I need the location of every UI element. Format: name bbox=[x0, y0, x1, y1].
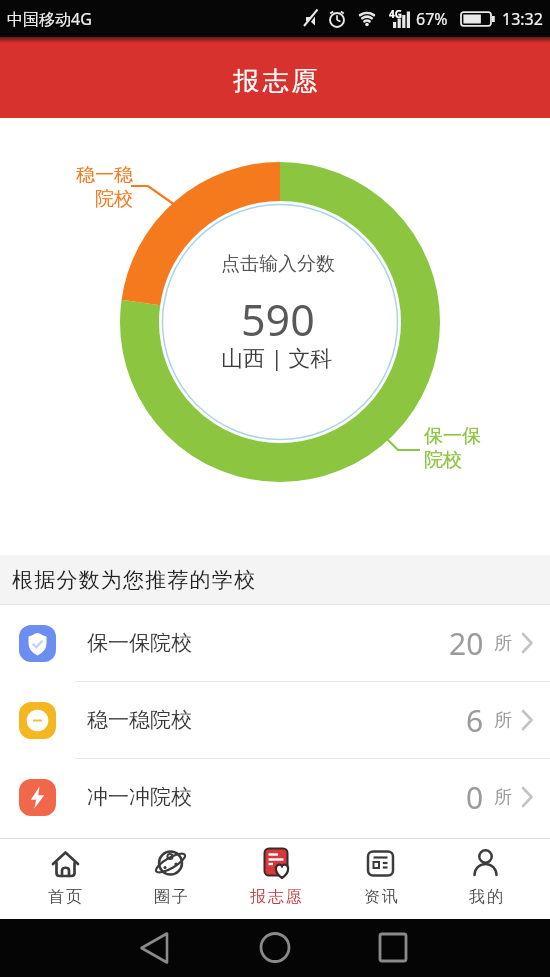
staticText: 首页 bbox=[47, 887, 83, 907]
staticText: 点击输入分数 bbox=[221, 252, 335, 276]
staticText: 报志愿 bbox=[249, 887, 303, 907]
staticText: 590 bbox=[241, 290, 315, 349]
staticText: 保一保院校 bbox=[87, 630, 192, 656]
staticText: 20 bbox=[449, 623, 484, 664]
staticText: 院校 bbox=[424, 448, 462, 472]
staticText: 圈子 bbox=[153, 887, 189, 907]
button[interactable]: 我的 bbox=[433, 839, 538, 919]
staticText: 稳一稳院校 bbox=[87, 707, 192, 733]
staticText: 所 bbox=[494, 709, 512, 732]
staticText: 所 bbox=[494, 632, 512, 655]
staticText: 稳一稳 bbox=[76, 163, 133, 187]
staticText: 中国移动4G bbox=[7, 8, 92, 30]
staticText: 报志愿 bbox=[232, 65, 319, 98]
button[interactable]: 稳一稳院校 bbox=[0, 682, 550, 758]
button[interactable]: 圈子 bbox=[118, 839, 223, 919]
staticText: 冲一冲院校 bbox=[87, 784, 192, 810]
staticText: 67% bbox=[416, 8, 448, 30]
staticText: 资讯 bbox=[363, 887, 399, 907]
staticText: 13:32 bbox=[502, 8, 543, 30]
button[interactable]: 报志愿 bbox=[0, 37, 550, 118]
staticText: 山西 | 文科 bbox=[221, 342, 333, 372]
staticText: 6 bbox=[466, 700, 484, 741]
button[interactable]: 点击输入分数 bbox=[0, 118, 550, 555]
staticText: 院校 bbox=[95, 187, 133, 211]
staticText: 根据分数为您推荐的学校 bbox=[12, 567, 257, 593]
button[interactable]: 保一保院校 bbox=[0, 605, 550, 681]
staticText: 4G bbox=[389, 7, 402, 21]
staticText: 所 bbox=[494, 786, 512, 809]
button[interactable]: 资讯 bbox=[328, 839, 433, 919]
button[interactable]: 冲一冲院校 bbox=[0, 759, 550, 835]
button[interactable]: 首页 bbox=[12, 839, 118, 919]
button[interactable]: 报志愿 bbox=[223, 839, 328, 919]
staticText: 0 bbox=[466, 777, 484, 818]
staticText: 我的 bbox=[468, 887, 504, 907]
staticText: 保一保 bbox=[424, 424, 481, 448]
